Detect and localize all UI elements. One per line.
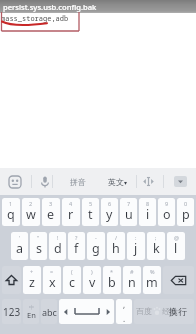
staticText: m [146, 274, 158, 291]
staticText: ! [57, 234, 59, 241]
staticText: @ [174, 234, 179, 241]
staticText: 经验 [162, 306, 178, 316]
button[interactable]: Space [59, 299, 114, 324]
button[interactable]: ? [68, 232, 85, 260]
button[interactable]: 换行 [134, 299, 194, 324]
button[interactable]: abc [41, 299, 57, 324]
staticText: abc [42, 306, 57, 318]
staticText: 123 [3, 305, 21, 319]
staticText: u [125, 206, 133, 223]
button[interactable]: 0 [177, 198, 194, 226]
staticText: f [74, 240, 79, 257]
button[interactable]: % [143, 266, 161, 294]
button[interactable]: 英文 [102, 168, 134, 195]
staticText: x [49, 274, 56, 291]
staticText: ' [19, 234, 21, 241]
staticText: p [182, 206, 190, 223]
button[interactable]: , [116, 299, 132, 324]
staticText: 英文 [108, 177, 124, 187]
staticText: ) [91, 268, 93, 275]
button[interactable]: 1 [2, 198, 20, 226]
staticText: / [115, 234, 118, 241]
staticText: ? [75, 234, 78, 241]
staticText: 6 [108, 200, 112, 207]
staticText: 拼音 [70, 177, 86, 187]
staticText: En [27, 310, 36, 320]
button[interactable]: 6 [101, 198, 118, 226]
staticText: s [36, 240, 42, 257]
button[interactable]: Shift [2, 266, 21, 294]
button[interactable]: # [123, 266, 141, 294]
staticText: 0 [184, 200, 188, 207]
staticText: mass_storage,adb [1, 14, 69, 24]
button[interactable]: Voice input [34, 168, 56, 195]
staticText: 4 [69, 200, 73, 207]
button[interactable]: ( [63, 266, 81, 294]
staticText: y [106, 206, 113, 223]
button[interactable]: Hide keyboard [165, 168, 196, 195]
button[interactable]: 3 [42, 198, 60, 226]
staticText: = [50, 268, 54, 275]
staticText: 2 [29, 200, 33, 207]
button[interactable]: Backspace [163, 266, 194, 294]
staticText: 5 [89, 200, 93, 207]
button[interactable]: Emoji [4, 168, 26, 195]
button[interactable]: = [43, 266, 61, 294]
staticText: i [146, 206, 150, 223]
staticText: l [174, 240, 178, 257]
button[interactable]: ; [147, 232, 165, 260]
staticText: 百度 [136, 306, 152, 316]
staticText: r [68, 206, 74, 223]
staticText: e [47, 206, 55, 223]
button[interactable]: + [23, 266, 41, 294]
button[interactable]: 4 [62, 198, 80, 226]
staticText: d [54, 240, 62, 257]
staticText: a [16, 240, 24, 257]
staticText: j [134, 240, 138, 257]
staticText: * [110, 268, 114, 275]
button[interactable]: 拼音 [62, 168, 94, 195]
button[interactable]: 5 [82, 198, 99, 226]
button[interactable]: 123 [2, 299, 21, 324]
staticText: 换行 [169, 306, 187, 317]
staticText: c [69, 274, 76, 291]
button[interactable]: 8 [139, 198, 156, 226]
button[interactable]: " [30, 232, 47, 260]
staticText: : [135, 234, 137, 241]
staticText: ; [155, 234, 157, 241]
button[interactable]: ) [83, 266, 101, 294]
button[interactable]: - [87, 232, 105, 260]
button[interactable]: 2 [22, 198, 40, 226]
staticText: . [123, 313, 126, 324]
staticText: w [26, 206, 36, 223]
staticText: persist.sys.usb.config.bak [3, 2, 97, 12]
staticText: n [128, 274, 136, 291]
staticText: ( [71, 268, 73, 275]
staticText: v [89, 274, 96, 291]
staticText: o [163, 206, 171, 223]
button[interactable]: ' [11, 232, 28, 260]
button[interactable]: * [103, 266, 121, 294]
button[interactable]: Move cursor [138, 168, 159, 195]
staticText: 3 [49, 200, 53, 207]
staticText: 8 [146, 200, 150, 207]
button[interactable]: 中 [23, 299, 39, 324]
button[interactable]: / [107, 232, 125, 260]
staticText: q [7, 206, 15, 223]
staticText: , [123, 299, 126, 310]
button[interactable]: 9 [158, 198, 175, 226]
button[interactable]: ! [49, 232, 66, 260]
staticText: # [130, 268, 134, 275]
staticText: 9 [165, 200, 169, 207]
staticText: " [37, 234, 40, 241]
staticText: 1 [9, 200, 13, 207]
button[interactable]: : [127, 232, 145, 260]
staticText: ▾ [124, 179, 128, 186]
staticText: + [30, 268, 34, 275]
button[interactable]: @ [167, 232, 185, 260]
staticText: t [88, 206, 93, 223]
staticText: 7 [127, 200, 131, 207]
staticText: - [95, 234, 97, 241]
staticText: g [92, 240, 100, 257]
button[interactable]: 7 [120, 198, 137, 226]
